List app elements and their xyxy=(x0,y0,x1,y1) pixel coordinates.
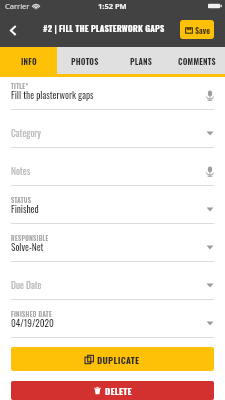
staticText: 04/19/2020 xyxy=(11,316,206,330)
staticText: Finished xyxy=(11,202,206,216)
button[interactable]: PLANS xyxy=(113,47,169,74)
staticText: INFO xyxy=(21,55,37,67)
staticText: Solve-Net xyxy=(11,240,206,254)
staticText: #2 | FILL THE PLASTERWORK GAPS xyxy=(43,22,165,34)
staticText: 1:52 PM xyxy=(98,1,127,11)
staticText: RESPONSIBLE xyxy=(11,233,49,242)
button[interactable]: COMMENTS xyxy=(169,47,225,74)
staticText: PHOTOS xyxy=(71,55,99,67)
staticText: DELETE xyxy=(105,384,132,397)
button[interactable]: DELETE xyxy=(11,381,214,400)
button[interactable]: Category xyxy=(11,110,214,148)
staticText: Due Date xyxy=(11,278,206,292)
staticText: DUPLICATE xyxy=(97,353,140,366)
button[interactable]: Notes xyxy=(11,148,214,186)
staticText: Category xyxy=(11,126,206,140)
staticText: COMMENTS xyxy=(178,55,216,67)
button[interactable]: Back xyxy=(0,14,26,47)
button[interactable]: STATUS xyxy=(11,186,214,224)
staticText: Save xyxy=(195,24,210,36)
button[interactable]: TITLE* xyxy=(11,77,214,110)
staticText: Notes xyxy=(11,164,206,178)
staticText: PLANS xyxy=(130,55,153,67)
button[interactable]: PHOTOS xyxy=(57,47,113,74)
button[interactable]: DUPLICATE xyxy=(11,347,214,371)
staticText: Carrier xyxy=(5,1,30,11)
button[interactable]: Due Date xyxy=(11,262,214,300)
staticText: TITLE* xyxy=(11,81,29,90)
button[interactable]: INFO xyxy=(0,47,57,74)
staticText: Fill the plasterwork gaps xyxy=(11,88,206,102)
button[interactable]: FINISHED DATE xyxy=(11,300,214,338)
staticText: STATUS xyxy=(11,195,32,204)
button[interactable]: Save xyxy=(180,20,214,39)
staticText: FINISHED DATE xyxy=(11,309,52,318)
button[interactable]: RESPONSIBLE xyxy=(11,224,214,262)
